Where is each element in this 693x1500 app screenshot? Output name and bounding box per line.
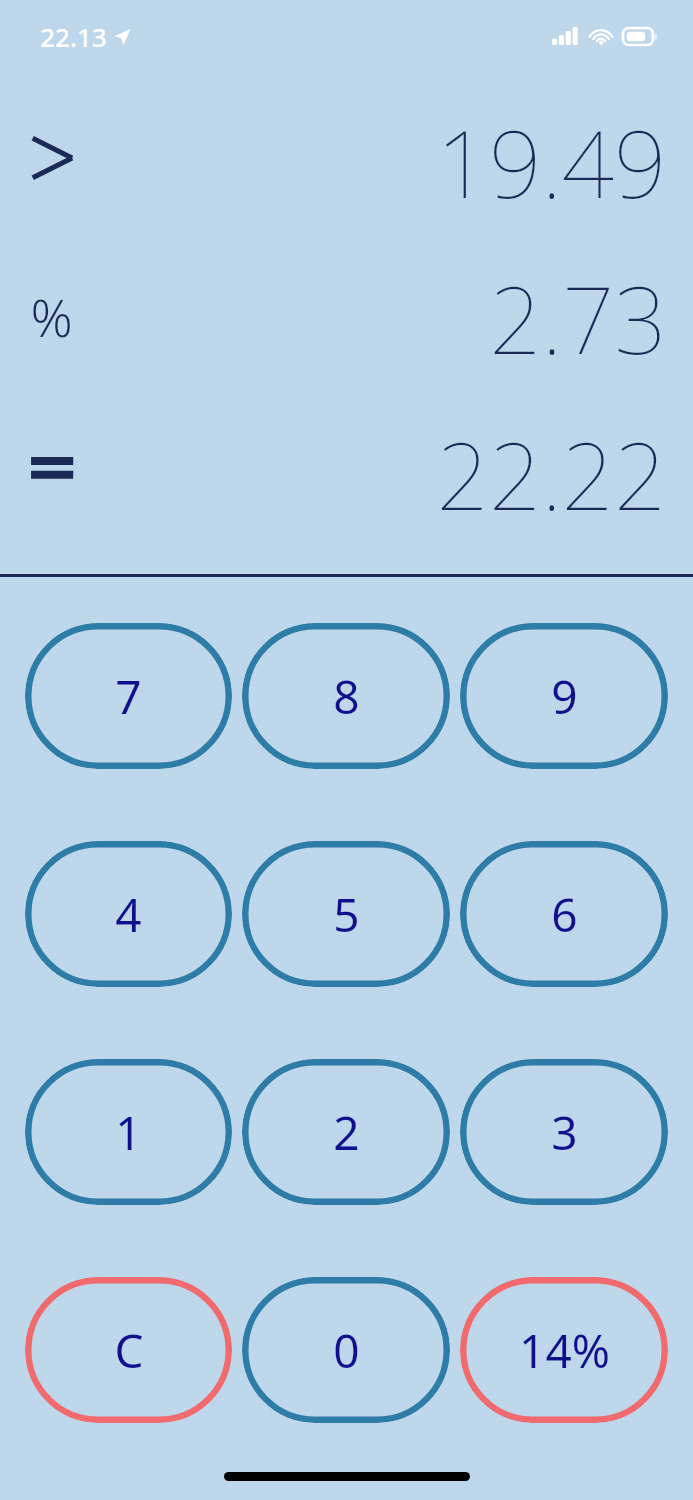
- staticText: 2.73: [489, 256, 667, 366]
- staticText: 2: [333, 1101, 360, 1164]
- button[interactable]: 7: [25, 623, 232, 769]
- staticText: 19.49: [436, 100, 667, 210]
- staticText: 22.13: [40, 19, 107, 54]
- staticText: 9: [551, 665, 578, 728]
- staticText: C: [114, 1319, 144, 1382]
- button[interactable]: 9: [460, 623, 668, 769]
- button[interactable]: 6: [460, 841, 668, 987]
- staticText: 6: [551, 883, 578, 946]
- staticText: 4: [115, 883, 142, 946]
- button[interactable]: 5: [242, 841, 450, 987]
- staticText: %: [30, 281, 73, 341]
- button[interactable]: 2: [242, 1059, 450, 1205]
- button[interactable]: 1: [25, 1059, 232, 1205]
- button[interactable]: 4: [25, 841, 232, 987]
- staticText: 3: [551, 1101, 578, 1164]
- staticText: 14%: [519, 1319, 610, 1382]
- staticText: 8: [333, 665, 360, 728]
- staticText: 1: [115, 1101, 142, 1164]
- button[interactable]: 8: [242, 623, 450, 769]
- staticText: 0: [333, 1319, 360, 1382]
- button[interactable]: 14%: [460, 1277, 668, 1423]
- staticText: 22.22: [436, 412, 667, 522]
- staticText: 5: [333, 883, 360, 946]
- button[interactable]: 0: [242, 1277, 450, 1423]
- staticText: 7: [115, 665, 142, 728]
- button[interactable]: C: [25, 1277, 232, 1423]
- button[interactable]: 3: [460, 1059, 668, 1205]
